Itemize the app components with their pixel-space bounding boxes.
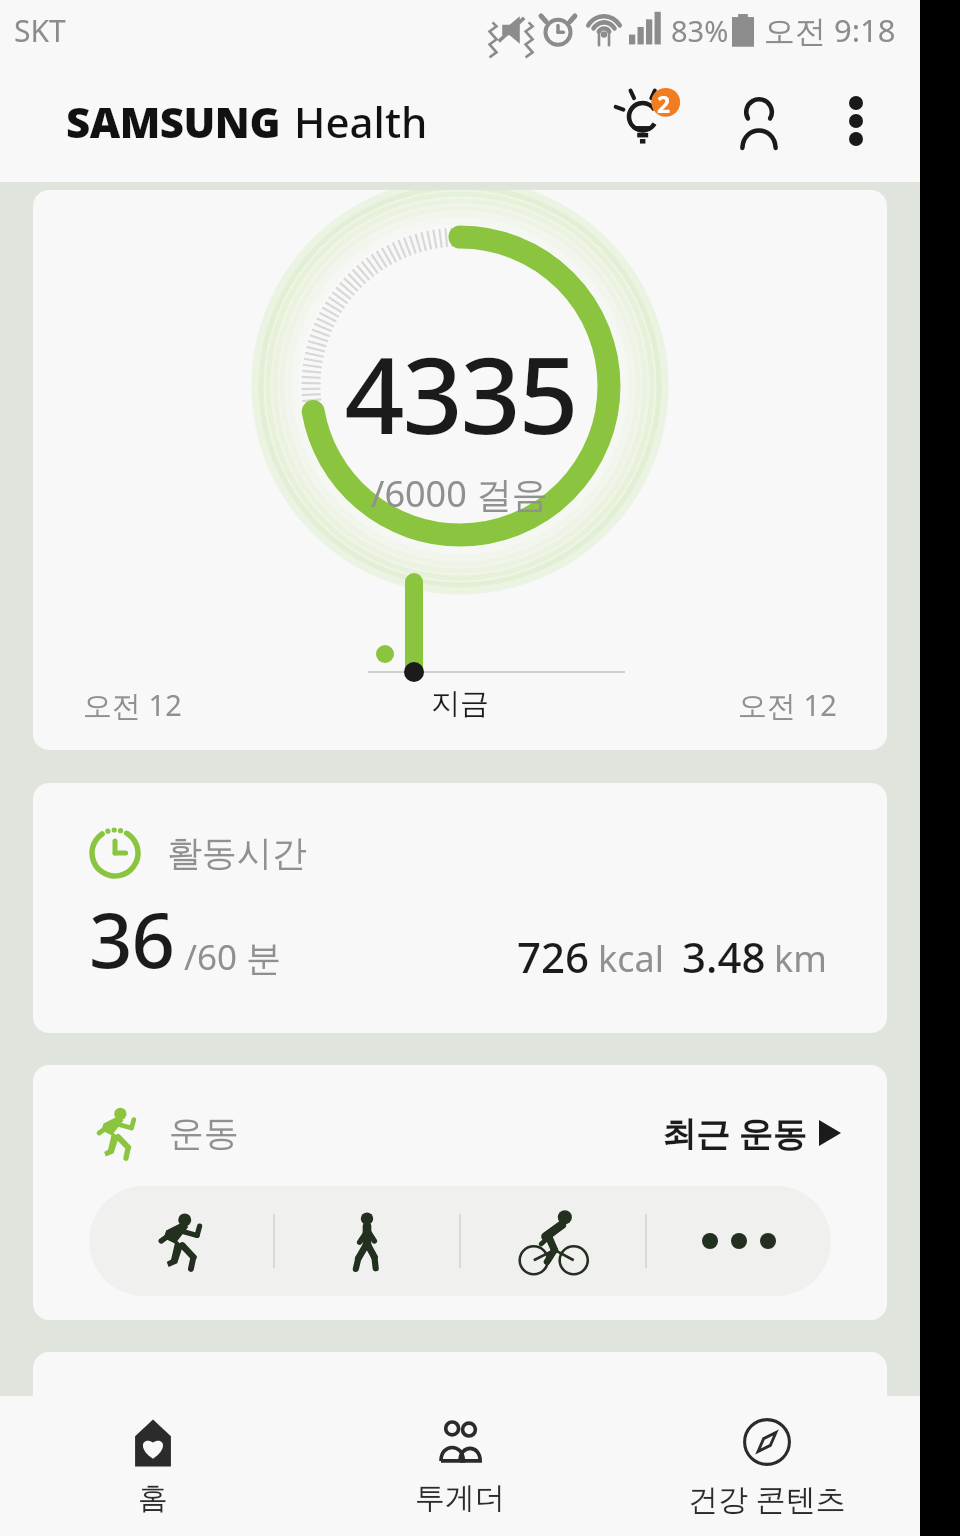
button[interactable]: More options (816, 81, 896, 161)
staticText: 오전 12 (83, 685, 182, 725)
staticText: 지금 (431, 685, 489, 722)
staticText: 활동시간 (167, 831, 307, 875)
staticText: /60 분 (184, 933, 282, 981)
staticText: /6000 걸음 (371, 469, 549, 518)
staticText: Health (294, 93, 428, 150)
button[interactable]: 활동시간 (33, 783, 887, 1033)
button[interactable]: 투게더 (306, 1396, 613, 1536)
button[interactable] (33, 1352, 887, 1472)
staticText: 홈 (138, 1479, 168, 1517)
button[interactable]: Running (89, 1186, 273, 1296)
staticText: 오전 12 (738, 685, 837, 725)
button[interactable]: 홈 (0, 1396, 306, 1536)
staticText: 3.48 (682, 928, 766, 985)
staticText: SAMSUNG (66, 93, 280, 150)
staticText: SKT (14, 10, 66, 51)
button[interactable]: More exercises (647, 1186, 831, 1296)
staticText: 83% (671, 11, 729, 50)
button[interactable]: Cycling (461, 1186, 645, 1296)
staticText: kcal (598, 934, 664, 983)
staticText: 726 (517, 928, 590, 985)
button[interactable]: 운동 (33, 1065, 887, 1320)
staticText: km (774, 934, 827, 983)
button[interactable]: 최근 운동 (662, 1110, 841, 1156)
button[interactable]: Tips (604, 78, 690, 164)
button[interactable]: Profile (716, 78, 802, 164)
button[interactable]: 건강 콘텐츠 (613, 1396, 920, 1536)
staticText: 건강 콘텐츠 (688, 1478, 846, 1519)
button[interactable]: Walking (275, 1186, 459, 1296)
staticText: 오전 9:18 (764, 9, 896, 51)
staticText: 36 (89, 887, 174, 991)
button[interactable]: 4335 (33, 190, 887, 750)
staticText: 2 (657, 88, 671, 119)
staticText: 최근 운동 (662, 1110, 807, 1156)
staticText: 4335 (344, 322, 577, 465)
staticText: 투게더 (415, 1479, 505, 1517)
staticText: 운동 (169, 1111, 239, 1155)
